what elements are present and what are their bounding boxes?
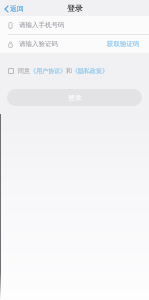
button[interactable]: 登录 — [7, 89, 142, 106]
staticText: 登录 — [68, 93, 82, 102]
staticText: 登录 — [67, 3, 83, 13]
other: Agree to terms checkbox — [8, 68, 14, 74]
staticText: 请输入验证码 — [19, 40, 58, 48]
button[interactable]: Agree to terms checkbox — [0, 65, 149, 77]
staticText: 获取验证码 — [107, 40, 140, 48]
staticText: 返回 — [10, 4, 24, 13]
button[interactable]: 请输入手机号码 — [0, 16, 149, 34]
staticText: 同意《用户协议》和《隐私政策》 — [18, 67, 108, 75]
button[interactable]: 返回 — [0, 2, 30, 15]
staticText: 请输入手机号码 — [19, 21, 65, 29]
button[interactable]: 获取验证码 — [106, 38, 141, 50]
button[interactable]: 请输入验证码 — [8, 35, 106, 53]
